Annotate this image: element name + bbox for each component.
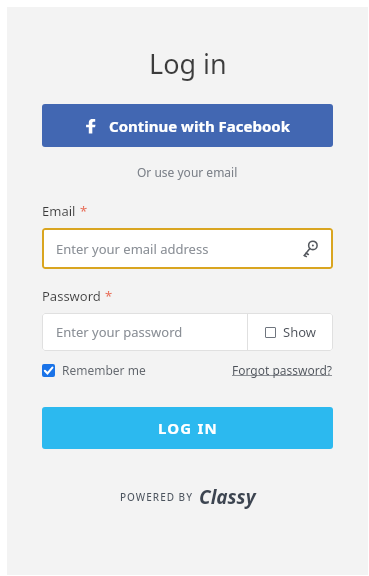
button[interactable]: Enter your password xyxy=(42,313,247,351)
button[interactable]: Show xyxy=(248,313,333,351)
staticText: Show xyxy=(283,323,316,341)
staticText: Log in xyxy=(149,45,227,82)
button[interactable]: Continue with Facebook xyxy=(42,104,333,147)
button[interactable]: Show saved password xyxy=(301,240,319,258)
button[interactable]: Remember me xyxy=(42,362,146,378)
staticText: Enter your email address xyxy=(56,240,301,258)
staticText: Forgot password? xyxy=(232,362,333,378)
staticText: LOG IN xyxy=(158,418,218,438)
staticText: Password xyxy=(42,287,101,305)
staticText: * xyxy=(80,202,88,220)
staticText: Email xyxy=(42,202,76,220)
staticText: Continue with Facebook xyxy=(109,116,291,136)
button[interactable]: Forgot password? xyxy=(232,362,333,378)
staticText: POWERED BY xyxy=(120,490,193,504)
staticText: Classy xyxy=(199,484,256,510)
staticText: Or use your email xyxy=(137,164,238,180)
button[interactable]: LOG IN xyxy=(42,407,333,449)
button[interactable]: Enter your email address xyxy=(42,228,333,269)
staticText: Remember me xyxy=(62,362,146,378)
staticText: * xyxy=(105,287,113,305)
staticText: Enter your password xyxy=(56,323,183,341)
